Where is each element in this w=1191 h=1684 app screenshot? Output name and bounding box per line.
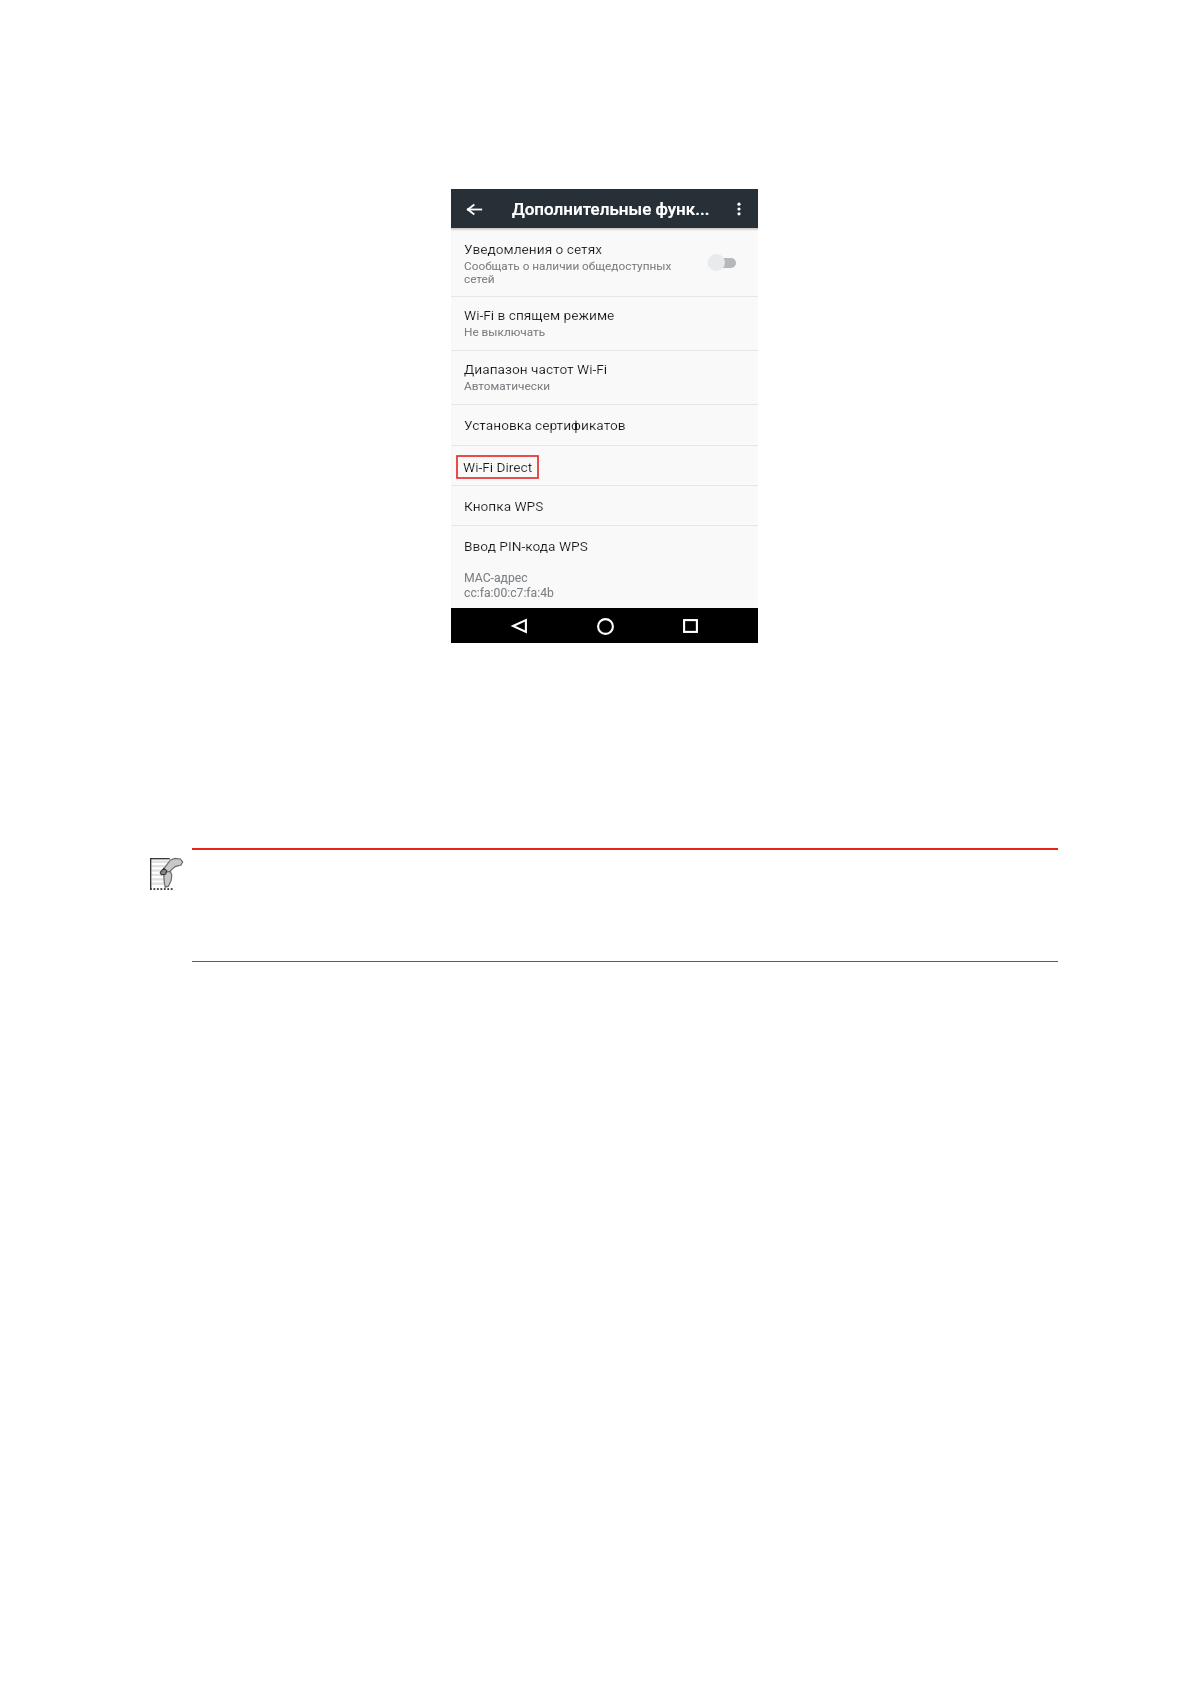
staticText: Кнопка WPS: [464, 498, 544, 514]
staticText: cc:fa:00:c7:fa:4b: [464, 586, 554, 600]
staticText: Ввод PIN-кода WPS: [464, 538, 588, 554]
button[interactable]: Wi-Fi в спящем режиме: [451, 297, 758, 350]
button[interactable]: Назад: [462, 197, 486, 221]
button[interactable]: Главный экран: [590, 611, 620, 641]
button[interactable]: Кнопка WPS: [451, 486, 758, 525]
button[interactable]: Уведомления о сетях: [451, 228, 758, 296]
staticText: Уведомления о сетях: [464, 241, 603, 257]
staticText: Установка сертификатов: [464, 417, 626, 433]
button[interactable]: Ещё: [726, 196, 752, 222]
staticText: Сообщать о наличии общедоступных сетей: [464, 259, 672, 286]
button[interactable]: Установка сертификатов: [451, 405, 758, 445]
button[interactable]: Назад: [504, 611, 534, 641]
button[interactable]: Wi-Fi Direct: [451, 446, 758, 485]
staticText: Не выключать: [464, 325, 546, 339]
staticText: Диапазон частот Wi-Fi: [464, 361, 608, 377]
staticText: MAC-адрес: [464, 571, 528, 585]
staticText: Дополнительные функ...: [512, 199, 710, 219]
button[interactable]: Диапазон частот Wi-Fi: [451, 351, 758, 404]
staticText: Автоматически: [464, 379, 551, 393]
staticText: Wi-Fi в спящем режиме: [464, 307, 615, 323]
button[interactable]: Обзор: [675, 611, 705, 641]
staticText: Wi-Fi Direct: [463, 459, 533, 475]
